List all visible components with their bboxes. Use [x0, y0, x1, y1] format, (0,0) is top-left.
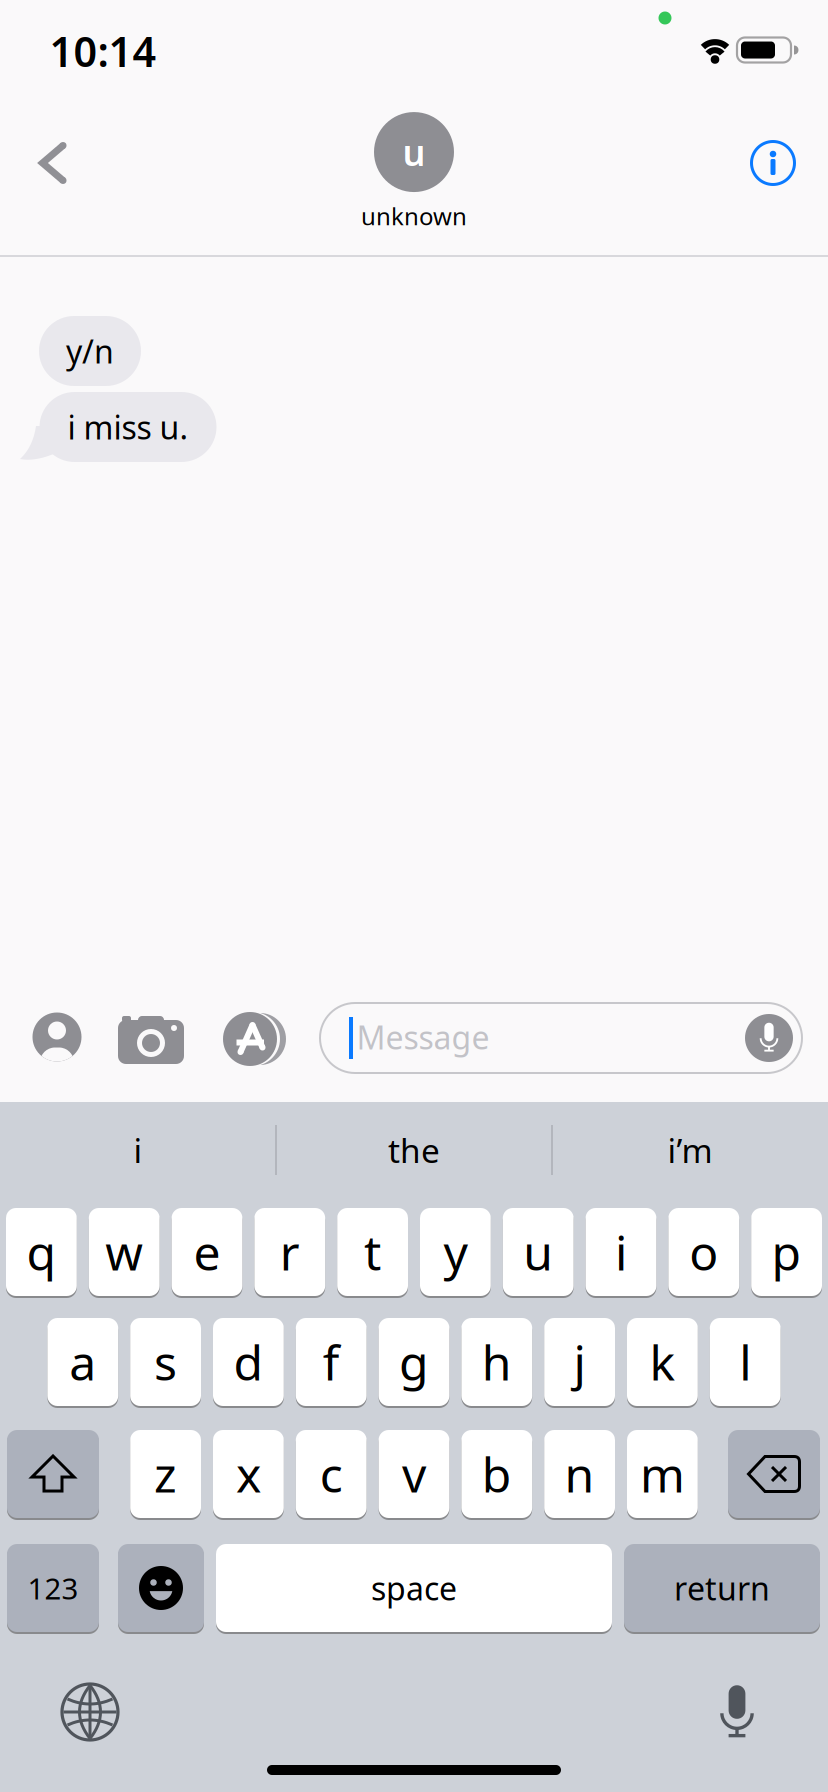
button[interactable]: Info	[751, 141, 794, 184]
button[interactable]: q	[6, 1207, 77, 1297]
button[interactable]: Dictate	[717, 1684, 757, 1738]
staticText: w	[105, 1220, 143, 1284]
staticText: unknown	[361, 200, 467, 232]
staticText: r	[280, 1220, 300, 1284]
button[interactable]: 123	[7, 1543, 99, 1633]
button[interactable]: e	[172, 1207, 242, 1297]
staticText: o	[689, 1220, 718, 1284]
staticText: i	[133, 1128, 142, 1172]
button[interactable]: unknown, contact details	[361, 112, 467, 232]
button[interactable]: k	[627, 1317, 698, 1407]
button[interactable]: the	[279, 1105, 549, 1195]
button[interactable]: a	[47, 1317, 118, 1407]
button[interactable]: space	[216, 1543, 612, 1633]
button[interactable]: g	[379, 1317, 449, 1407]
button[interactable]: Camera	[118, 1014, 184, 1064]
button[interactable]: u	[503, 1207, 574, 1297]
button[interactable]: Next keyboard	[62, 1684, 118, 1740]
button[interactable]: Dictate	[745, 1014, 793, 1062]
button[interactable]: x	[213, 1429, 284, 1519]
staticText: return	[674, 1567, 770, 1609]
button[interactable]: y	[420, 1207, 491, 1297]
button[interactable]: Delete	[728, 1429, 820, 1519]
button[interactable]: i	[586, 1207, 656, 1297]
staticText: f	[323, 1330, 340, 1394]
staticText: g	[399, 1330, 429, 1394]
staticText: s	[154, 1330, 177, 1394]
staticText: Message	[356, 1016, 489, 1058]
staticText: h	[482, 1330, 512, 1394]
staticText: space	[371, 1567, 457, 1609]
staticText: j	[574, 1330, 586, 1394]
button[interactable]: z	[130, 1429, 201, 1519]
button[interactable]: return	[624, 1543, 820, 1633]
button[interactable]: w	[89, 1207, 160, 1297]
button[interactable]: o	[668, 1207, 739, 1297]
button[interactable]: i’m	[555, 1105, 825, 1195]
staticText: i miss u.	[67, 406, 188, 448]
button[interactable]: Back	[23, 133, 83, 193]
button[interactable]: c	[296, 1429, 367, 1519]
button[interactable]: j	[544, 1317, 615, 1407]
button[interactable]: n	[544, 1429, 615, 1519]
staticText: m	[640, 1442, 685, 1506]
button[interactable]: l	[710, 1317, 781, 1407]
staticText: c	[320, 1442, 343, 1506]
staticText: v	[402, 1442, 426, 1506]
staticText: the	[388, 1128, 440, 1172]
staticText: l	[739, 1330, 751, 1394]
button[interactable]: Emoji	[118, 1543, 204, 1633]
staticText: 10:14	[49, 24, 156, 78]
button[interactable]: v	[379, 1429, 449, 1519]
staticText: p	[772, 1220, 802, 1284]
button[interactable]: Contact	[32, 1012, 81, 1061]
button[interactable]: d	[213, 1317, 284, 1407]
staticText: n	[565, 1442, 595, 1506]
staticText: q	[26, 1220, 56, 1284]
button[interactable]: Apps	[223, 1012, 287, 1066]
button[interactable]: s	[130, 1317, 201, 1407]
button[interactable]: p	[751, 1207, 822, 1297]
staticText: y/n	[66, 330, 114, 372]
button[interactable]: r	[254, 1207, 325, 1297]
staticText: 123	[27, 1568, 78, 1607]
staticText: d	[233, 1330, 263, 1394]
staticText: b	[482, 1442, 512, 1506]
staticText: t	[364, 1220, 381, 1284]
staticText: a	[69, 1330, 96, 1394]
staticText: i’m	[667, 1128, 712, 1172]
button[interactable]: b	[461, 1429, 532, 1519]
staticText: u	[523, 1220, 553, 1284]
staticText: y	[443, 1220, 467, 1284]
button[interactable]: f	[296, 1317, 367, 1407]
button[interactable]: t	[337, 1207, 408, 1297]
button[interactable]: Shift	[7, 1429, 99, 1519]
staticText: k	[649, 1330, 675, 1394]
button[interactable]: i	[3, 1105, 273, 1195]
staticText: z	[154, 1442, 177, 1506]
staticText: u	[402, 128, 425, 176]
staticText: i	[615, 1220, 627, 1284]
button[interactable]: m	[627, 1429, 698, 1519]
staticText: x	[236, 1442, 261, 1506]
staticText: e	[193, 1220, 220, 1284]
button[interactable]: h	[461, 1317, 532, 1407]
button[interactable]: Message text field	[320, 1003, 802, 1073]
